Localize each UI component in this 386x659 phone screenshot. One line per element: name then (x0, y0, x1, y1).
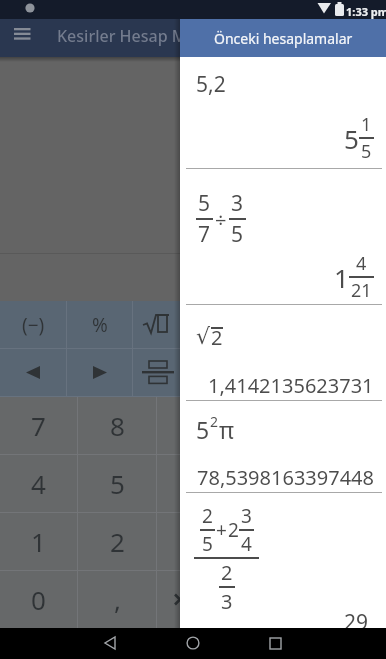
staticText: 4 (241, 531, 252, 557)
staticText: 4 (356, 251, 367, 276)
staticText: 2 (211, 324, 223, 351)
button[interactable] (0, 349, 66, 396)
staticText: 1,4142135623731 (208, 372, 374, 399)
staticText: π (219, 414, 235, 445)
button[interactable]: (−) (0, 301, 66, 348)
staticText: 2 (110, 524, 125, 559)
staticText: 5 (196, 414, 210, 445)
staticText: Önceki hesaplamalar (214, 29, 353, 48)
staticText: 2 (228, 517, 239, 543)
staticText: 6 (264, 466, 279, 501)
staticText: 4 (31, 466, 46, 501)
staticText: 21 (351, 278, 372, 303)
button[interactable]: 7 (0, 397, 77, 454)
button[interactable] (96, 629, 124, 657)
button[interactable] (67, 349, 132, 396)
button[interactable]: 5 (180, 401, 386, 492)
staticText: 5 (110, 466, 125, 501)
staticText: 2 (210, 412, 219, 431)
button[interactable]: 3 (157, 513, 386, 570)
staticText: Kesirler Hesap M (57, 25, 187, 47)
staticText: 3 (231, 189, 244, 218)
button[interactable] (133, 301, 386, 348)
staticText: 0 (31, 582, 46, 617)
staticText: 7 (198, 220, 211, 249)
staticText: 8 (110, 408, 125, 443)
staticText: 2 (221, 559, 233, 586)
staticText: 5 (198, 189, 211, 218)
staticText: 5,2 (196, 70, 226, 99)
staticText: 5 (361, 139, 372, 164)
staticText: √ (196, 324, 211, 350)
staticText: ÷ (215, 206, 227, 233)
staticText: 5 (231, 220, 244, 249)
button[interactable]: 4 (0, 455, 77, 512)
button[interactable]: 2 (180, 493, 386, 628)
button[interactable]: 5 (180, 169, 386, 304)
staticText: 78,5398163397448 (197, 464, 374, 491)
staticText: 3 (241, 503, 252, 529)
button[interactable]: 9 (157, 397, 386, 454)
staticText: 7 (31, 408, 46, 443)
staticText: 3 (221, 588, 233, 615)
staticText: 1 (31, 524, 46, 559)
button[interactable]: 2 (78, 513, 156, 570)
button[interactable] (133, 349, 386, 396)
staticText: 29 (344, 608, 369, 637)
button[interactable]: 1 (0, 513, 77, 570)
button[interactable]: 8 (78, 397, 156, 454)
button[interactable]: × (157, 571, 386, 628)
staticText: 5 (202, 531, 213, 557)
button[interactable]: 0 (0, 571, 77, 628)
button[interactable]: 5,2 (180, 57, 386, 168)
staticText: 5 (344, 121, 359, 156)
staticText: 1 (361, 112, 372, 137)
button[interactable]: 6 (157, 455, 386, 512)
button[interactable]: 5 (78, 455, 156, 512)
staticText: 2 (202, 503, 213, 529)
button[interactable]: % (67, 301, 132, 348)
staticText: % (92, 312, 108, 338)
staticText: (−) (22, 312, 45, 338)
staticText: + (216, 517, 227, 543)
button[interactable]: Önceki hesaplamalar (180, 19, 386, 57)
staticText: 1 (334, 260, 349, 295)
button[interactable]: √ (180, 305, 386, 400)
staticText: 1:33 pm (346, 4, 386, 19)
staticText: , (114, 582, 121, 617)
button[interactable] (179, 629, 207, 657)
button[interactable] (261, 629, 289, 657)
button[interactable] (4, 19, 44, 57)
